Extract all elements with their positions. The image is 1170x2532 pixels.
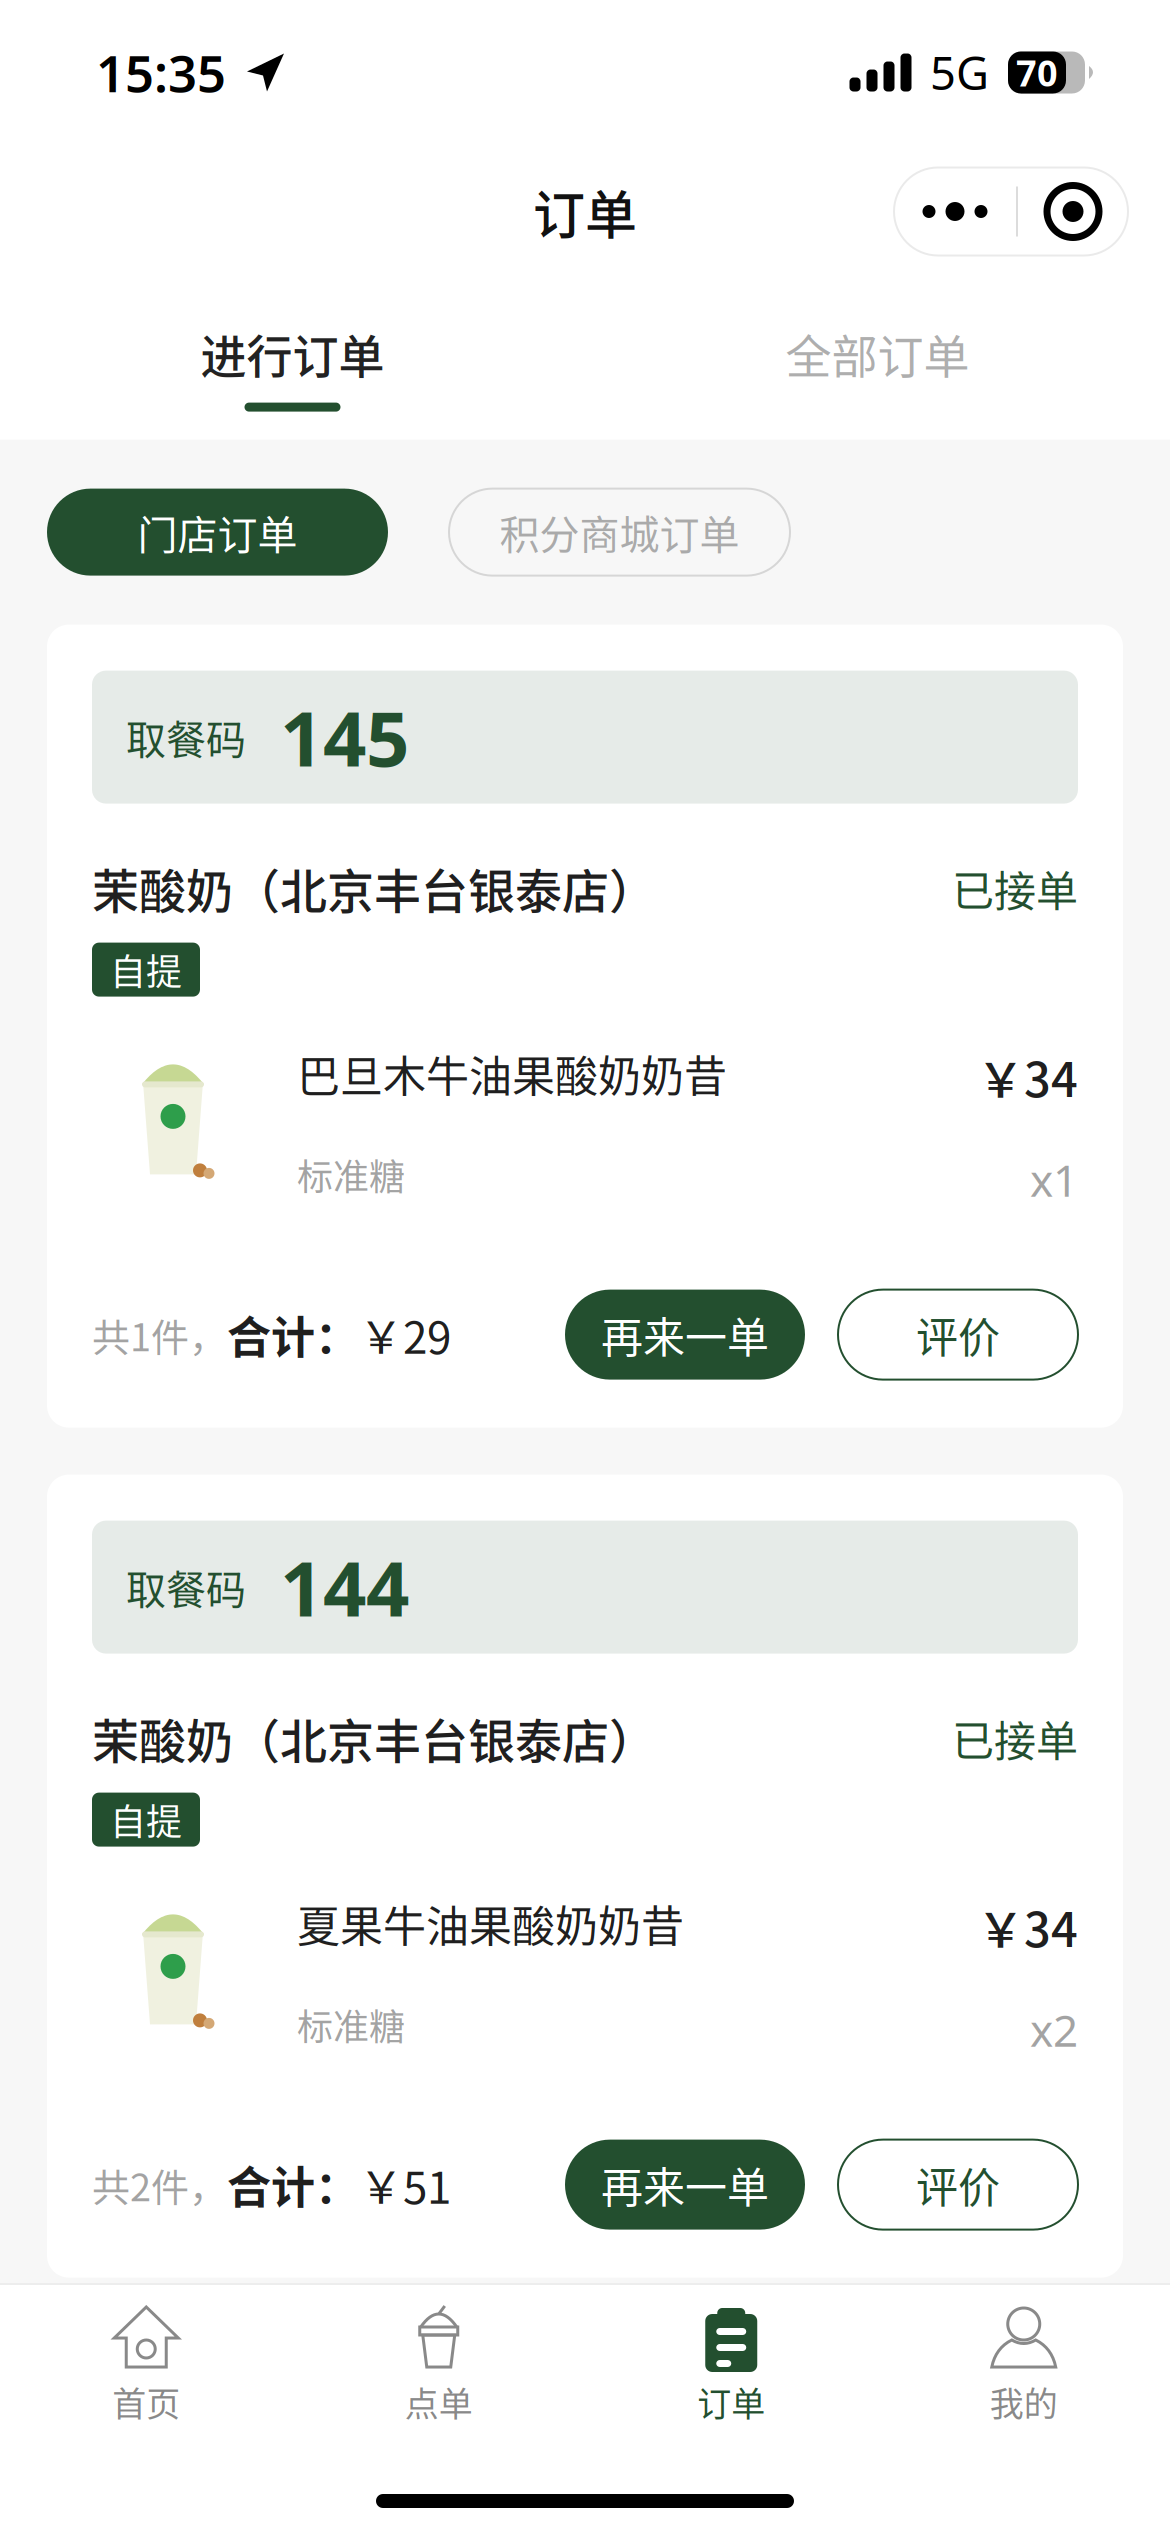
button[interactable]: 点单 (292, 2305, 585, 2426)
staticText: 70 (1016, 49, 1058, 96)
staticText: 全部订单 (785, 320, 969, 387)
staticText: 标准糖 (297, 1148, 405, 1200)
staticText: 共1件， (92, 1307, 227, 1362)
staticText: 茉酸奶（北京丰台银泰店） (92, 854, 656, 922)
staticText: 144 (280, 1537, 409, 1637)
staticText: 评价 (916, 2154, 1000, 2215)
staticText: 取餐码 (126, 1558, 246, 1616)
staticText: 合计： (227, 1303, 359, 1366)
staticText: 取餐码 (126, 708, 246, 766)
staticText: 自提 (110, 943, 182, 996)
staticText: 再来一单 (601, 1304, 769, 1365)
button[interactable]: 再来一单 (565, 2140, 805, 2230)
staticText: 夏果牛油果酸奶奶昔 (297, 1892, 684, 1955)
staticText: 门店订单 (137, 503, 297, 561)
staticText: ￥34 (977, 1892, 1078, 1960)
staticText: 巴旦木牛油果酸奶奶昔 (297, 1042, 727, 1105)
button[interactable]: 我的 (877, 2305, 1170, 2426)
staticText: 进行订单 (200, 320, 384, 387)
staticText: x2 (1030, 2000, 1078, 2059)
staticText: 已接单 (952, 1708, 1078, 1768)
button[interactable]: 评价 (838, 2140, 1078, 2230)
staticText: 已接单 (952, 858, 1078, 918)
staticText: 15:35 (96, 39, 226, 106)
staticText: 合计： (227, 2153, 359, 2216)
staticText: 5G (930, 42, 989, 103)
staticText: 积分商城订单 (499, 503, 739, 561)
button[interactable]: 门店订单 (47, 489, 388, 576)
staticText: 订单 (697, 2377, 765, 2426)
button[interactable]: 积分商城订单 (449, 489, 790, 576)
staticText: x1 (1030, 1150, 1078, 1209)
staticText: 再来一单 (601, 2154, 769, 2215)
button[interactable]: 再来一单 (565, 1290, 805, 1380)
staticText: 标准糖 (297, 1998, 405, 2050)
staticText: 共2件， (92, 2157, 227, 2212)
staticText: 订单 (533, 174, 637, 249)
staticText: 点单 (405, 2377, 473, 2426)
button[interactable]: 评价 (838, 1290, 1078, 1380)
staticText: ￥51 (359, 2153, 451, 2216)
staticText: 首页 (112, 2377, 180, 2426)
staticText: 茉酸奶（北京丰台银泰店） (92, 1704, 656, 1772)
button[interactable]: 订单 (585, 2305, 877, 2426)
staticText: 我的 (990, 2377, 1058, 2426)
button[interactable]: 首页 (0, 2305, 292, 2426)
staticText: ￥34 (977, 1042, 1078, 1110)
staticText: ￥29 (359, 1303, 451, 1366)
staticText: 自提 (110, 1793, 182, 1846)
staticText: 145 (280, 687, 409, 787)
staticText: 评价 (916, 1304, 1000, 1365)
button[interactable]: 全部订单 (585, 320, 1170, 412)
button[interactable]: 进行订单 (0, 320, 585, 412)
button[interactable]: 更多 (894, 167, 1128, 255)
